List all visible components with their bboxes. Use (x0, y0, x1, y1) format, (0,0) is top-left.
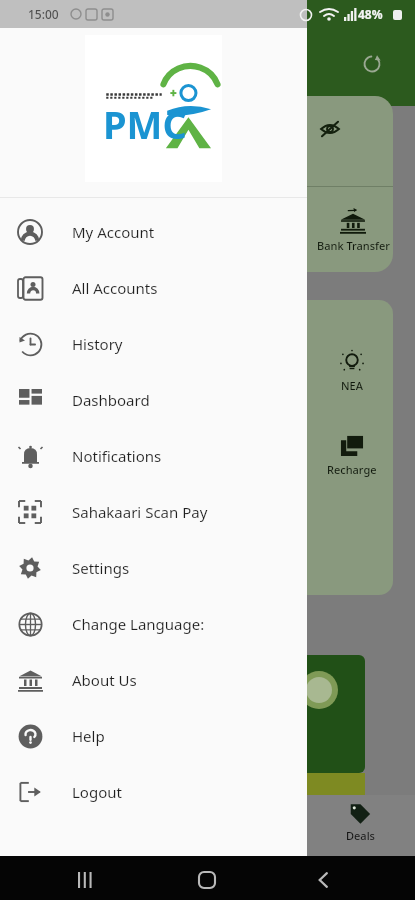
button[interactable]: About Us (0, 652, 307, 708)
button[interactable]: Back (312, 868, 336, 892)
staticText: 15:00 (28, 6, 59, 22)
staticText: Deals (346, 828, 375, 843)
staticText: About Us (72, 670, 137, 690)
button[interactable]: Notifications (0, 428, 307, 484)
staticText: Recharge (327, 462, 377, 477)
staticText: Change Language: (72, 614, 205, 634)
button[interactable]: Change Language: (0, 596, 307, 652)
button[interactable] (20, 655, 365, 773)
button[interactable]: Home (195, 868, 219, 892)
staticText: PMC (103, 98, 187, 150)
staticText: Dashboard (72, 390, 150, 410)
button[interactable]: Sahakaari Scan Pay (0, 484, 307, 540)
button[interactable]: Bank Transfer (20, 96, 393, 272)
staticText: NEA (341, 378, 363, 393)
staticText: Sahakaari Scan Pay (72, 502, 208, 522)
button[interactable]: Deals (330, 803, 390, 843)
button[interactable]: Recent apps (74, 868, 98, 892)
staticText: History (72, 334, 123, 354)
button[interactable]: Logout (0, 764, 307, 820)
button[interactable]: My Account (0, 204, 307, 260)
button[interactable]: Refresh (352, 44, 392, 84)
staticText: All Accounts (72, 278, 158, 298)
staticText: Notifications (72, 446, 162, 466)
staticText: Settings (72, 558, 130, 578)
staticText: My Account (72, 222, 155, 242)
button[interactable]: History (0, 316, 307, 372)
button[interactable]: Help (0, 708, 307, 764)
staticText: Logout (72, 782, 122, 802)
staticText: Bank Transfer (317, 238, 390, 253)
button[interactable]: Dashboard (0, 372, 307, 428)
button[interactable]: All Accounts (0, 260, 307, 316)
staticText: Help (72, 726, 105, 746)
staticText: 48% (358, 6, 383, 22)
button[interactable]: Settings (0, 540, 307, 596)
